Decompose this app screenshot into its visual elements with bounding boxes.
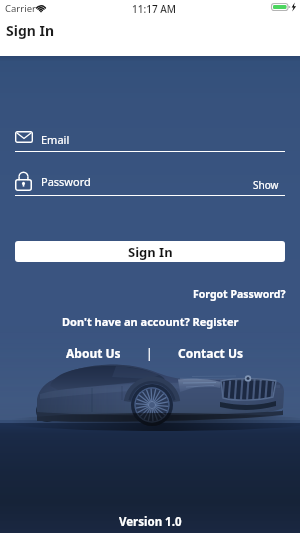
staticText: Sign In	[128, 243, 173, 261]
staticText: Password	[41, 174, 91, 189]
staticText: Email	[41, 132, 70, 147]
button[interactable]: Contact Us	[178, 345, 244, 361]
button[interactable]: Forgot Password?	[193, 287, 286, 301]
button[interactable]: Show	[253, 178, 279, 192]
staticText: |	[146, 345, 153, 361]
staticText: Version 1.0	[119, 514, 182, 530]
button[interactable]: Password	[0, 170, 300, 197]
staticText: Carrier	[5, 2, 36, 15]
button[interactable]: Sign In	[15, 241, 285, 262]
staticText: 11:17 AM	[132, 2, 176, 16]
button[interactable]: Don't have an account? Register	[62, 314, 239, 329]
staticText: Sign In	[6, 21, 55, 40]
button[interactable]: Email	[0, 127, 300, 153]
button[interactable]: About Us	[66, 345, 121, 361]
